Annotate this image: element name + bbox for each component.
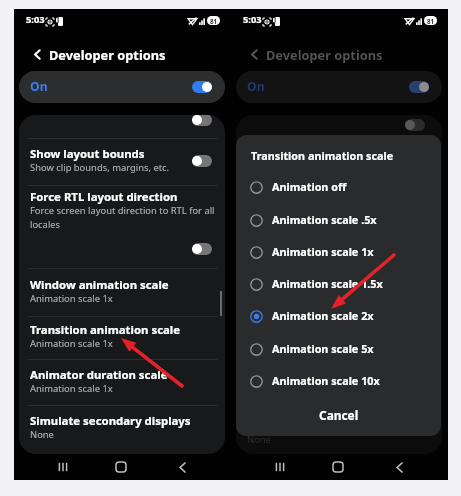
button[interactable]: Back xyxy=(165,454,199,480)
button[interactable]: Toggle xyxy=(192,81,212,93)
button[interactable]: Toggle xyxy=(409,81,429,93)
button[interactable]: Home xyxy=(104,454,138,480)
staticText: 81 xyxy=(427,17,435,25)
button[interactable]: Toggle xyxy=(405,119,425,131)
staticText: 5:03 xyxy=(243,13,262,26)
button[interactable]: Back xyxy=(382,454,416,480)
button[interactable]: Animation scale 1x xyxy=(236,236,441,268)
button[interactable]: Show layout bounds xyxy=(19,146,225,178)
button[interactable]: Animation off xyxy=(236,171,441,203)
staticText: Show clip bounds, margins, etc. xyxy=(30,161,170,174)
staticText: Animation scale 10x xyxy=(272,373,380,388)
button[interactable]: Back xyxy=(243,40,265,68)
staticText: Animator duration scale xyxy=(30,367,168,383)
staticText: Transition animation scale xyxy=(251,148,394,163)
staticText: Force screen layout direction to RTL for… xyxy=(30,204,215,231)
staticText: Window animation scale xyxy=(30,277,169,293)
staticText: On xyxy=(30,78,48,95)
staticText: Animation scale 1.5x xyxy=(272,276,383,291)
button[interactable]: Animation scale 5x xyxy=(236,333,441,365)
button[interactable]: Back xyxy=(26,40,48,68)
staticText: Animation scale .5x xyxy=(272,212,377,227)
button[interactable]: Home xyxy=(321,454,355,480)
staticText: On xyxy=(247,78,265,95)
staticText: None xyxy=(30,428,54,441)
staticText: 5:03 xyxy=(26,13,45,26)
staticText: Animation scale 1x xyxy=(30,292,113,305)
button[interactable]: Force RTL layout direction xyxy=(19,189,225,233)
button[interactable]: Simulate secondary displays xyxy=(19,413,225,445)
button[interactable]: Animation scale 1.5x xyxy=(236,268,441,300)
staticText: Show layout bounds xyxy=(30,146,145,162)
button[interactable]: Recents xyxy=(263,454,297,480)
staticText: Simulate secondary displays xyxy=(30,413,191,429)
staticText: 81 xyxy=(210,17,218,25)
staticText: Transition animation scale xyxy=(30,322,181,338)
button[interactable]: Animation scale 10x xyxy=(236,365,441,397)
staticText: Developer options xyxy=(49,46,166,63)
button[interactable]: On xyxy=(236,71,442,103)
button[interactable]: Animator duration scale xyxy=(19,367,225,399)
staticText: Animation off xyxy=(272,179,347,194)
button[interactable]: Animation scale .5x xyxy=(236,204,441,236)
staticText: Force RTL layout direction xyxy=(30,189,178,205)
button[interactable]: Toggle xyxy=(192,155,212,167)
staticText: None xyxy=(247,433,271,446)
staticText: Animation scale 2x xyxy=(272,308,374,323)
staticText: Animation scale 1x xyxy=(272,244,374,259)
button[interactable]: Recents xyxy=(46,454,80,480)
button[interactable]: Toggle xyxy=(192,243,212,255)
staticText: Animation scale 5x xyxy=(272,341,374,356)
button[interactable]: On xyxy=(19,71,225,103)
staticText: Animation scale 1x xyxy=(30,382,113,395)
button[interactable]: Transition animation scale xyxy=(19,322,225,354)
button[interactable]: Cancel xyxy=(236,407,441,429)
button[interactable]: Animation scale 2x xyxy=(236,300,441,332)
staticText: Cancel xyxy=(319,407,359,423)
staticText: Animation scale 1x xyxy=(30,337,113,350)
button[interactable]: Window animation scale xyxy=(19,277,225,309)
button[interactable]: Toggle xyxy=(192,115,212,126)
staticText: Developer options xyxy=(266,46,383,63)
